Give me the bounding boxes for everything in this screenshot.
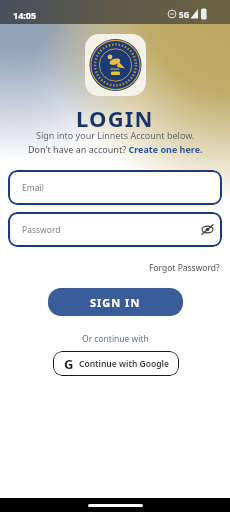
staticText: Password [22,224,61,236]
staticText: Forgot Password? [149,262,220,274]
button[interactable]: Password [8,212,222,247]
staticText: 5G [179,9,190,20]
staticText: Continue with Google [79,358,169,370]
staticText: Or continue with [82,333,149,345]
staticText: Sign into your Linnets Account below. [36,129,195,141]
staticText: 14:05 [13,9,37,21]
staticText: LOGIN [76,103,154,133]
button[interactable]: SIGN IN [48,288,183,316]
button[interactable]: Don't have an account? Create one here. [28,143,203,155]
staticText: Email [22,182,44,194]
staticText: SIGN IN [90,295,141,310]
staticText: G [64,355,74,373]
button[interactable]: Email [8,170,222,205]
button[interactable]: Forgot Password? [149,262,220,274]
button[interactable]: G [53,351,179,376]
